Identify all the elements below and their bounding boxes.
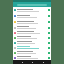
button[interactable]: Recents xyxy=(41,60,45,64)
button[interactable]: Unread badge xyxy=(13,13,51,19)
button[interactable]: Unread badge xyxy=(13,19,51,25)
button[interactable]: Unread badge xyxy=(48,42,50,44)
button[interactable]: Unread badge xyxy=(13,35,51,40)
button[interactable]: Unread badge xyxy=(48,15,50,17)
button[interactable]: Unread badge xyxy=(13,45,51,50)
button[interactable]: Unread badge xyxy=(13,50,51,55)
button[interactable]: Unread badge xyxy=(48,47,50,49)
button[interactable]: Back xyxy=(20,60,24,64)
button[interactable]: Unread badge xyxy=(48,9,50,11)
button[interactable]: Unread badge xyxy=(48,57,50,59)
button[interactable]: Unread badge xyxy=(48,37,50,39)
button[interactable]: Unread badge xyxy=(48,27,50,29)
button[interactable]: Unread badge xyxy=(48,52,50,54)
button[interactable]: Home xyxy=(30,60,34,64)
button[interactable]: Unread badge xyxy=(13,55,51,60)
button[interactable]: Unread badge xyxy=(13,25,51,30)
button[interactable]: Unread badge xyxy=(48,21,50,23)
button[interactable]: Unread badge xyxy=(48,32,50,34)
button[interactable]: Unread badge xyxy=(13,30,51,35)
button[interactable]: Unread badge xyxy=(13,40,51,45)
button[interactable]: Unread badge xyxy=(13,7,51,13)
button[interactable]: Search xyxy=(17,4,47,6)
